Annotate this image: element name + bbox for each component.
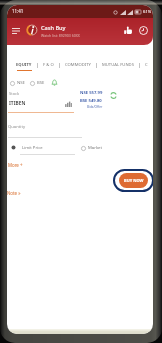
- staticText: Cash Buy: [41, 24, 66, 32]
- staticText: COMMODITY: [65, 62, 91, 68]
- staticText: Watch list: 892903 60XX: [41, 33, 80, 38]
- button[interactable]: BUY NOW: [119, 173, 148, 188]
- button[interactable]: Note »: [7, 190, 21, 196]
- button[interactable]: Like: [121, 23, 136, 38]
- staticText: BSE 549.80: [80, 98, 102, 104]
- button[interactable]: MUTUAL FUNDS: [97, 62, 139, 70]
- staticText: BSE: [37, 80, 45, 86]
- button[interactable]: Menu: [8, 23, 23, 39]
- button[interactable]: NSE: [10, 80, 25, 86]
- button[interactable]: Bids/Offer: [87, 105, 103, 109]
- staticText: MUTUAL FUNDS: [102, 62, 134, 68]
- staticText: Quantity: [8, 124, 26, 130]
- staticText: NSE: [17, 80, 25, 86]
- button[interactable]: C: [140, 62, 153, 70]
- staticText: 11:41: [12, 8, 24, 14]
- staticText: Stock: [9, 91, 20, 96]
- staticText: BUY NOW: [124, 178, 144, 183]
- staticText: C: [145, 62, 148, 68]
- staticText: Limit Price: [22, 145, 43, 151]
- button[interactable]: F & O: [38, 62, 59, 70]
- button[interactable]: Refresh: [109, 91, 118, 100]
- button[interactable]: More +: [8, 162, 23, 168]
- staticText: Market: [88, 145, 102, 151]
- button[interactable]: Chart: [63, 99, 73, 109]
- button[interactable]: Alerts: [49, 78, 59, 87]
- button[interactable]: COMMODITY: [60, 62, 96, 70]
- button[interactable]: BSE: [30, 80, 45, 86]
- button[interactable]: Market: [81, 145, 102, 151]
- staticText: EQUITY: [16, 62, 32, 68]
- staticText: F & O: [43, 62, 54, 68]
- staticText: NSE 557.99: [80, 90, 103, 96]
- button[interactable]: History: [136, 23, 151, 38]
- button[interactable]: EQUITY: [11, 62, 37, 71]
- staticText: 61%: [143, 9, 152, 15]
- staticText: ITIBEN: [9, 100, 26, 107]
